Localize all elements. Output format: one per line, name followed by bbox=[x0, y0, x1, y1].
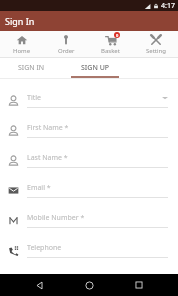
staticText: Setting bbox=[146, 47, 166, 55]
button[interactable]: First Name * bbox=[0, 115, 178, 145]
staticText: Last Name * bbox=[27, 153, 168, 163]
staticText: SIGN IN bbox=[18, 63, 45, 73]
button[interactable]: Home bbox=[0, 31, 44, 57]
staticText: 0 bbox=[116, 33, 119, 38]
staticText: Telephone bbox=[27, 243, 168, 253]
staticText: First Name * bbox=[27, 123, 168, 133]
button[interactable]: SIGN IN bbox=[0, 58, 62, 78]
staticText: Title bbox=[27, 93, 162, 103]
staticText: SIGN UP bbox=[81, 63, 110, 73]
button[interactable]: Last Name * bbox=[0, 145, 178, 175]
staticText: 4:17 bbox=[161, 1, 175, 11]
staticText: Mobile Number * bbox=[27, 213, 168, 223]
button[interactable]: Email * bbox=[0, 175, 178, 205]
button[interactable]: Back bbox=[28, 274, 50, 296]
button[interactable]: Order bbox=[44, 31, 88, 57]
staticText: Home bbox=[13, 47, 31, 55]
button[interactable]: 0 bbox=[88, 31, 133, 57]
staticText: Email * bbox=[27, 183, 168, 193]
button[interactable]: Setting bbox=[133, 31, 178, 57]
staticText: Sign In bbox=[5, 15, 35, 27]
staticText: Order bbox=[58, 47, 75, 55]
button[interactable]: Home bbox=[78, 274, 100, 296]
staticText: Basket bbox=[101, 47, 120, 55]
button[interactable]: Mobile Number * bbox=[0, 205, 178, 235]
button[interactable]: Telephone bbox=[0, 235, 178, 265]
button[interactable]: Title bbox=[0, 85, 178, 115]
button[interactable]: SIGN UP bbox=[62, 58, 128, 78]
button[interactable]: Recents bbox=[128, 274, 150, 296]
